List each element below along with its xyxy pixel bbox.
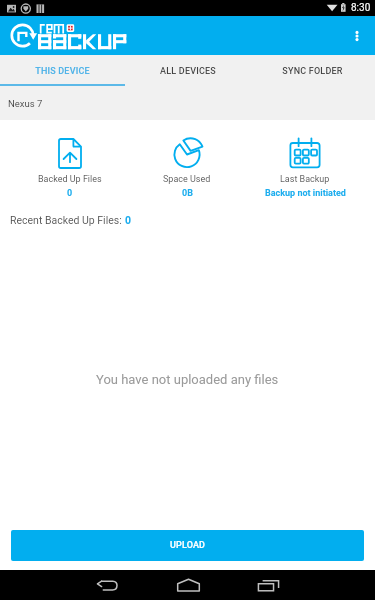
staticText: SYNC FOLDER (282, 66, 343, 77)
button[interactable]: More options (342, 21, 372, 51)
button[interactable]: SYNC FOLDER (250, 55, 375, 86)
staticText: Backed Up Files (38, 174, 102, 185)
staticText: Backup not initiated (265, 188, 346, 199)
staticText: UPLOAD (170, 540, 206, 551)
button[interactable]: Recent apps (245, 570, 292, 600)
button[interactable]: Space Used (128, 138, 246, 199)
staticText: Last Backup (280, 174, 330, 185)
staticText: 0 (67, 188, 73, 199)
staticText: THIS DEVICE (35, 66, 90, 77)
button[interactable]: ALL DEVICES (125, 55, 250, 86)
staticText: 0 (125, 214, 132, 226)
staticText: Recent Backed Up Files: (10, 214, 125, 226)
button[interactable]: Back (84, 570, 131, 600)
staticText: ALL DEVICES (160, 66, 216, 77)
button[interactable]: Home (165, 570, 212, 600)
staticText: 0B (182, 188, 193, 199)
button[interactable]: UPLOAD (11, 530, 364, 561)
button[interactable]: Last Backup (246, 138, 364, 199)
staticText: 8:30 (351, 2, 371, 14)
button[interactable]: THIS DEVICE (0, 55, 125, 86)
staticText: Space Used (163, 174, 211, 185)
staticText: Nexus 7 (8, 98, 43, 109)
staticText: You have not uploaded any files (96, 372, 279, 387)
button[interactable]: Nexus 7 (0, 86, 375, 120)
button[interactable]: Backed Up Files (11, 138, 128, 199)
